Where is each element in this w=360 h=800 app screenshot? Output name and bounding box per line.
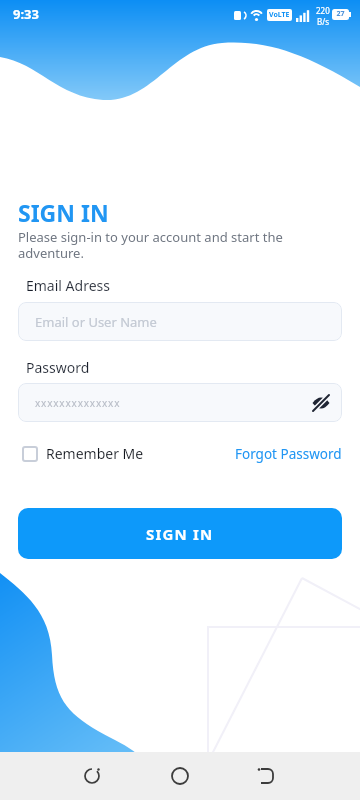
staticText: Email or User Name <box>35 313 157 331</box>
button[interactable]: Remember Me <box>18 444 144 463</box>
button[interactable]: xxxxxxxxxxxxxx <box>18 383 342 422</box>
staticText: VoLTE <box>269 10 290 20</box>
staticText: xxxxxxxxxxxxxx <box>35 396 121 410</box>
staticText: 220 <box>316 5 330 16</box>
staticText: 27 <box>333 9 348 19</box>
button[interactable] <box>252 762 280 790</box>
button[interactable]: Email or User Name <box>18 302 342 341</box>
staticText: 9:33 <box>13 5 39 23</box>
staticText: Password <box>26 358 90 377</box>
button[interactable] <box>78 762 106 790</box>
staticText: SIGN IN <box>18 197 109 228</box>
button[interactable] <box>166 762 194 790</box>
staticText: SIGN IN <box>146 524 214 544</box>
button[interactable]: SIGN IN <box>18 508 342 559</box>
staticText: Email Adress <box>26 276 110 295</box>
staticText: B/s <box>317 16 330 27</box>
button[interactable]: Forgot Password <box>235 445 342 463</box>
staticText: Please sign-in to your account and start… <box>18 228 283 261</box>
staticText: Remember Me <box>46 444 144 463</box>
